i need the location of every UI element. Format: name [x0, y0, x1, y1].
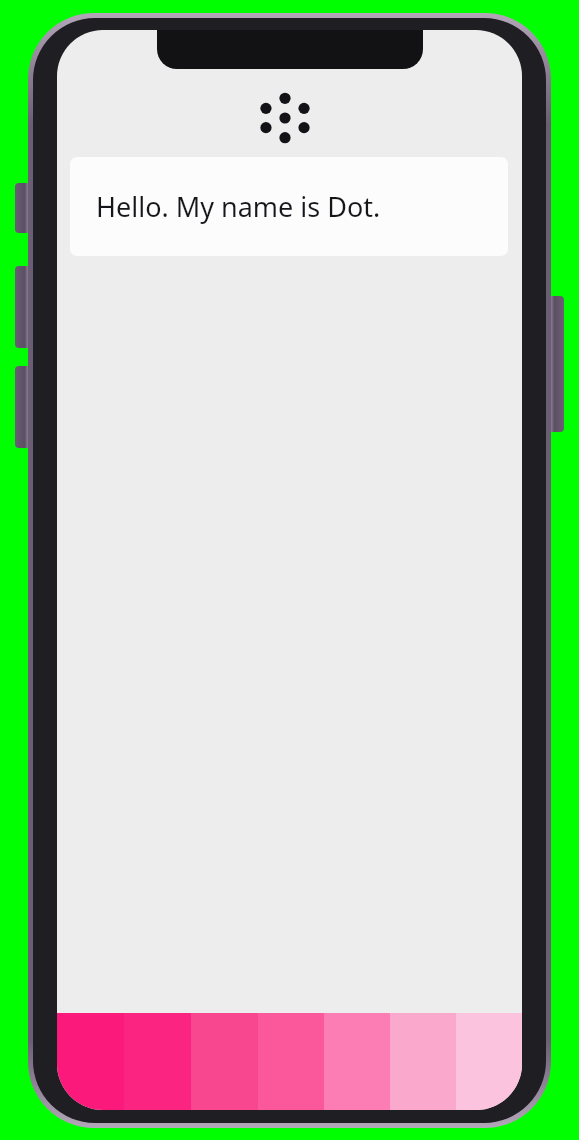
button[interactable]: Hello. My name is Dot.: [70, 157, 508, 256]
staticText: Hello. My name is Dot.: [96, 188, 381, 225]
button[interactable]: Power: [548, 296, 564, 432]
button[interactable]: Volume up: [15, 266, 31, 348]
button[interactable]: Volume down: [15, 366, 31, 448]
button[interactable]: Mute switch: [15, 183, 31, 233]
button[interactable]: Dot logo: [257, 90, 313, 146]
